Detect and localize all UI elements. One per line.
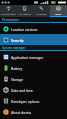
button[interactable]: Connections: [0, 5, 16, 17]
button[interactable]: Application manager: [0, 51, 67, 62]
button[interactable]: About device: [0, 106, 67, 117]
button[interactable]: More: [50, 5, 67, 17]
staticText: Location services: [11, 27, 38, 31]
button[interactable]: Location services: [0, 23, 67, 34]
button[interactable]: Battery: [0, 62, 67, 73]
staticText: Application manager: [11, 55, 44, 59]
staticText: About device: [11, 110, 32, 114]
button[interactable]: My device: [16, 5, 33, 17]
staticText: My device: [19, 12, 31, 15]
staticText: Battery: [11, 66, 23, 70]
staticText: Security: [11, 38, 24, 42]
staticText: Developer options: [11, 99, 40, 103]
staticText: More: [55, 12, 62, 15]
button[interactable]: Storage: [0, 73, 67, 84]
button[interactable]: Accounts: [33, 5, 50, 17]
button[interactable]: Developer options: [0, 95, 67, 106]
staticText: Accounts: [36, 12, 47, 15]
button[interactable]: Date and time: [0, 84, 67, 95]
staticText: Connections: [1, 12, 16, 15]
staticText: Storage: [11, 77, 24, 81]
staticText: System manager: [2, 46, 26, 50]
staticText: Date and time: [11, 88, 33, 92]
button[interactable]: Security: [0, 34, 67, 45]
staticText: Permissions: [2, 18, 19, 22]
